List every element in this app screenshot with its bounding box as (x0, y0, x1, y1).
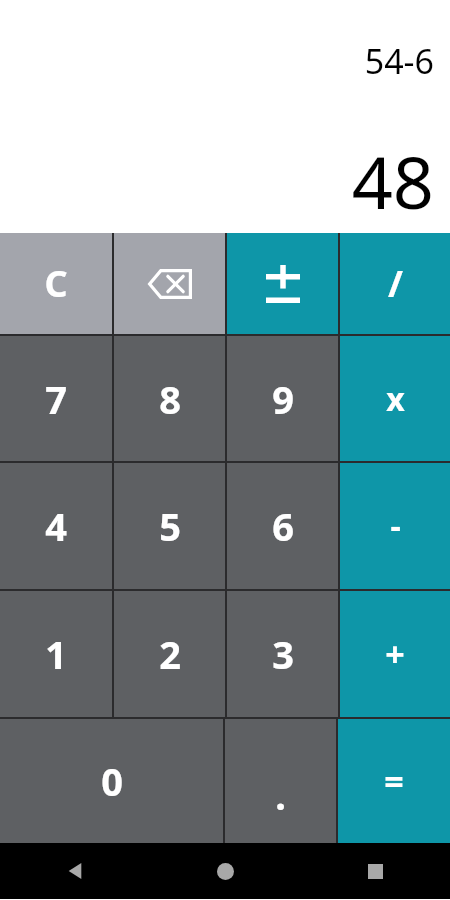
button[interactable]: Back (0, 843, 150, 899)
staticText: 54-6 (364, 38, 434, 84)
button[interactable]: Home (150, 843, 300, 899)
button[interactable]: Backspace (114, 233, 225, 334)
staticText: - (390, 504, 401, 548)
button[interactable]: Recents (300, 843, 450, 899)
staticText: . (275, 769, 286, 821)
button[interactable]: 7 (0, 336, 112, 461)
button[interactable]: Equals (338, 719, 450, 843)
staticText: 8 (159, 373, 181, 425)
button[interactable]: Divide (340, 233, 450, 334)
button[interactable]: 2 (114, 591, 225, 717)
staticText: 0 (101, 755, 123, 807)
staticText: C (44, 259, 68, 308)
staticText: 9 (272, 373, 294, 425)
button[interactable]: Multiply (340, 336, 450, 461)
button[interactable]: Clear (0, 233, 112, 334)
button[interactable]: 6 (227, 463, 338, 589)
button[interactable]: Decimal point (225, 719, 336, 843)
staticText: 1 (45, 628, 67, 680)
staticText: 2 (159, 628, 181, 680)
staticText: 7 (45, 373, 67, 425)
staticText: 3 (272, 628, 294, 680)
staticText: = (384, 758, 404, 804)
button[interactable]: 4 (0, 463, 112, 589)
button[interactable]: 1 (0, 591, 112, 717)
button[interactable]: 8 (114, 336, 225, 461)
button[interactable]: 5 (114, 463, 225, 589)
button[interactable]: 3 (227, 591, 338, 717)
button[interactable]: 0 (0, 719, 223, 843)
staticText: / (388, 259, 403, 308)
staticText: 4 (45, 500, 67, 552)
button[interactable]: 9 (227, 336, 338, 461)
button[interactable]: Plus (340, 591, 450, 717)
staticText: + (385, 631, 405, 677)
staticText: 5 (159, 500, 181, 552)
staticText: 6 (272, 500, 294, 552)
staticText: x (386, 377, 405, 421)
button[interactable]: Minus (340, 463, 450, 589)
staticText: 48 (351, 132, 434, 230)
button[interactable]: Plus minus (227, 233, 338, 334)
